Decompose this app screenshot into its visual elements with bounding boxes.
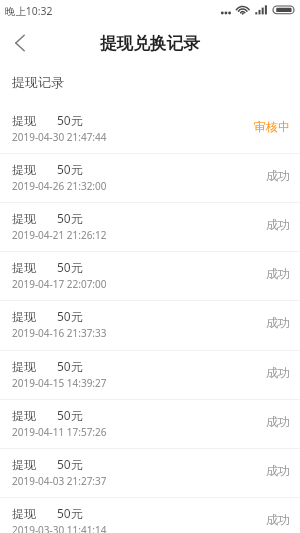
staticText: 2019-04-26 21:32:00 — [12, 179, 107, 193]
staticText: 成功 — [266, 315, 290, 330]
staticText: 提现 — [12, 309, 36, 324]
staticText: 提现 — [12, 359, 36, 374]
staticText: 2019-04-21 21:26:12 — [12, 228, 107, 242]
staticText: 成功 — [266, 266, 290, 281]
staticText: 50元 — [57, 505, 83, 521]
staticText: 2019-04-30 21:47:44 — [12, 130, 107, 144]
staticText: 50元 — [57, 161, 83, 177]
staticText: 提现 — [12, 162, 36, 177]
staticText: 50元 — [57, 456, 83, 472]
staticText: 成功 — [266, 512, 290, 527]
staticText: 成功 — [266, 365, 290, 380]
staticText: 50元 — [57, 259, 83, 275]
staticText: 成功 — [266, 463, 290, 478]
staticText: 成功 — [266, 217, 290, 232]
button[interactable]: 提现 — [0, 252, 300, 301]
staticText: 提现 — [12, 457, 36, 472]
button[interactable]: 提现 — [0, 154, 300, 203]
staticText: 2019-04-15 14:39:27 — [12, 376, 107, 390]
staticText: 晚上10:32 — [5, 4, 53, 18]
button[interactable]: 提现 — [0, 351, 300, 400]
staticText: 提现兑换记录 — [100, 33, 200, 54]
button[interactable]: 提现 — [0, 498, 300, 533]
staticText: 提现 — [12, 113, 36, 128]
staticText: 成功 — [266, 414, 290, 429]
button[interactable]: 提现 — [0, 105, 300, 154]
staticText: 提现 — [12, 260, 36, 275]
staticText: 50元 — [57, 358, 83, 374]
staticText: 2019-04-11 17:57:26 — [12, 425, 107, 439]
staticText: 50元 — [57, 112, 83, 128]
staticText: 提现记录 — [12, 74, 64, 90]
button[interactable]: 提现 — [0, 400, 300, 449]
staticText: 2019-04-17 22:07:00 — [12, 277, 107, 291]
staticText: 2019-04-16 21:37:33 — [12, 326, 107, 340]
staticText: 50元 — [57, 308, 83, 324]
staticText: 提现 — [12, 506, 36, 521]
staticText: 成功 — [266, 168, 290, 183]
staticText: 提现 — [12, 408, 36, 423]
button[interactable]: Back — [0, 22, 41, 64]
staticText: 2019-04-03 21:27:37 — [12, 474, 107, 488]
staticText: 2019-03-30 11:41:14 — [12, 523, 107, 533]
button[interactable]: 提现 — [0, 301, 300, 351]
staticText: 提现 — [12, 211, 36, 226]
button[interactable]: 提现 — [0, 449, 300, 498]
staticText: 审核中 — [254, 119, 290, 134]
staticText: 50元 — [57, 407, 83, 423]
staticText: 50元 — [57, 210, 83, 226]
button[interactable]: 提现 — [0, 203, 300, 252]
